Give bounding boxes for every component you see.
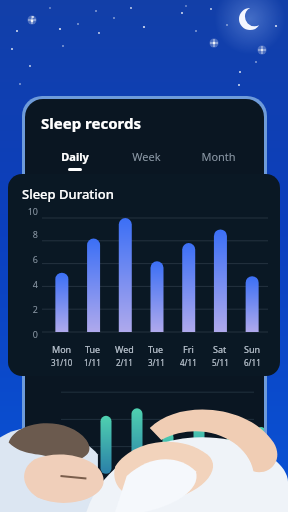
staticText: 2/11: [116, 357, 133, 368]
staticText: 3/11: [148, 357, 165, 368]
staticText: Sleep records: [41, 113, 141, 133]
staticText: Sleep Duration: [22, 185, 114, 203]
staticText: 0: [8, 328, 38, 340]
staticText: Tue: [85, 343, 101, 355]
button[interactable]: Daily: [39, 147, 110, 173]
staticText: 1/11: [84, 357, 101, 368]
staticText: Daily: [61, 149, 89, 164]
staticText: Month: [201, 149, 236, 164]
staticText: Fri: [183, 343, 194, 355]
staticText: 4: [8, 278, 38, 290]
staticText: 6/11: [244, 357, 261, 368]
button[interactable]: Month: [182, 147, 254, 170]
staticText: Tue: [148, 343, 164, 355]
staticText: 6: [8, 253, 38, 265]
staticText: 5/11: [212, 357, 229, 368]
staticText: 2: [8, 303, 38, 315]
staticText: Wed: [115, 343, 134, 355]
staticText: 31/10: [51, 357, 73, 368]
staticText: Mon: [52, 343, 72, 355]
staticText: Sat: [213, 343, 227, 355]
button[interactable]: Week: [110, 147, 182, 170]
staticText: Week: [132, 149, 161, 164]
staticText: 4/11: [180, 357, 197, 368]
staticText: 10: [8, 205, 38, 217]
staticText: Sun: [244, 343, 261, 355]
staticText: 8: [8, 228, 38, 240]
